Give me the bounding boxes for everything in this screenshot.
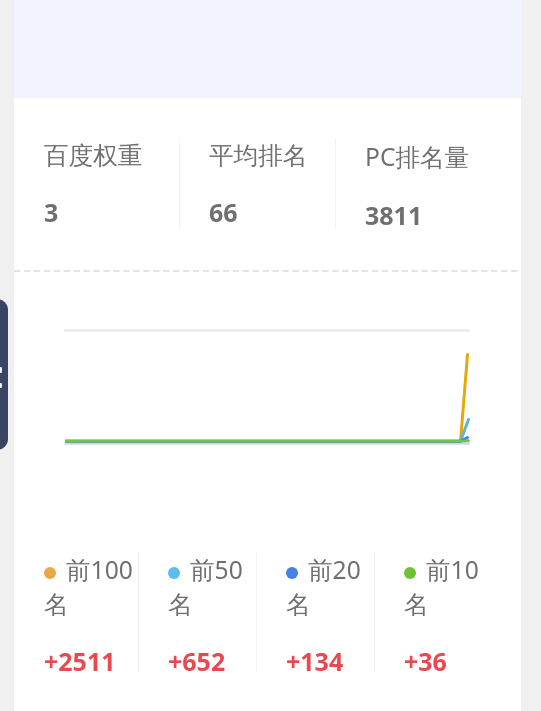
button[interactable]: PC排名量 [335, 140, 491, 230]
staticText: 66 [209, 195, 238, 229]
staticText: +36 [404, 644, 447, 678]
staticText: ●前50名 [168, 553, 259, 620]
button[interactable]: ●前10名 [374, 552, 492, 673]
staticText: ●前10名 [404, 553, 495, 620]
button[interactable]: 意见反馈 [0, 299, 8, 450]
staticText: 3811 [365, 198, 423, 230]
staticText: 3 [44, 195, 59, 229]
button[interactable]: ●前100名 [14, 552, 132, 673]
other: 排名趋势图 [14, 272, 521, 542]
button[interactable]: 平均排名 [179, 140, 335, 230]
staticText: 百度权重 [44, 140, 143, 171]
staticText: ●前20名 [286, 553, 377, 620]
staticText: 平均排名 [209, 140, 308, 171]
button[interactable]: ●前20名 [256, 552, 374, 673]
button[interactable]: ●前50名 [138, 552, 256, 673]
staticText: ●前100名 [44, 553, 135, 620]
staticText: PC排名量 [365, 140, 470, 174]
staticText: +2511 [44, 644, 116, 678]
staticText: +652 [168, 644, 226, 678]
button[interactable]: 百度权重 [14, 140, 170, 230]
staticText: +134 [286, 644, 344, 678]
